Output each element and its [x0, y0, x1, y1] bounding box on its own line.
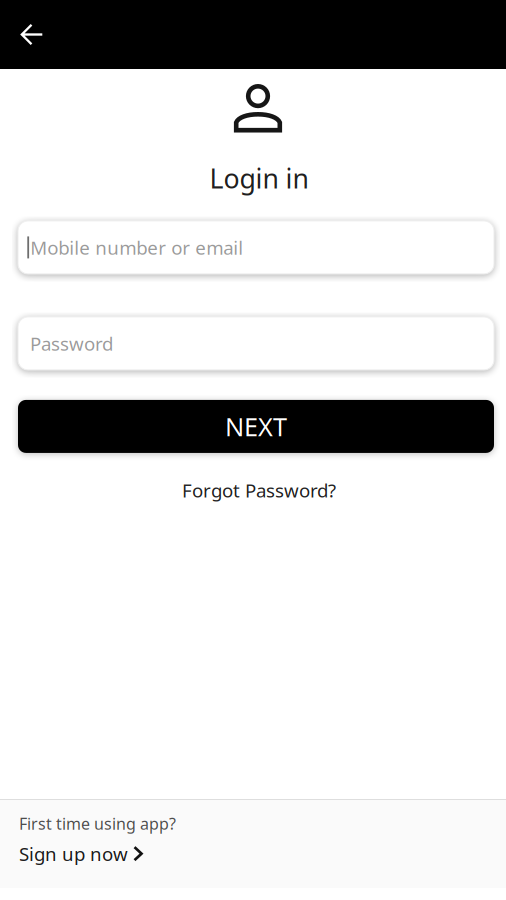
- button[interactable]: Sign up now: [19, 834, 143, 870]
- staticText: Forgot Password?: [182, 478, 336, 503]
- button[interactable]: Back: [11, 12, 53, 56]
- button[interactable]: NEXT: [18, 400, 494, 453]
- staticText: Password: [30, 331, 113, 356]
- staticText: Login in: [209, 160, 308, 196]
- staticText: NEXT: [225, 410, 287, 443]
- staticText: First time using app?: [19, 813, 176, 834]
- button[interactable]: Forgot Password?: [170, 474, 348, 507]
- staticText: Sign up now: [19, 841, 128, 866]
- staticText: Mobile number or email: [30, 235, 243, 260]
